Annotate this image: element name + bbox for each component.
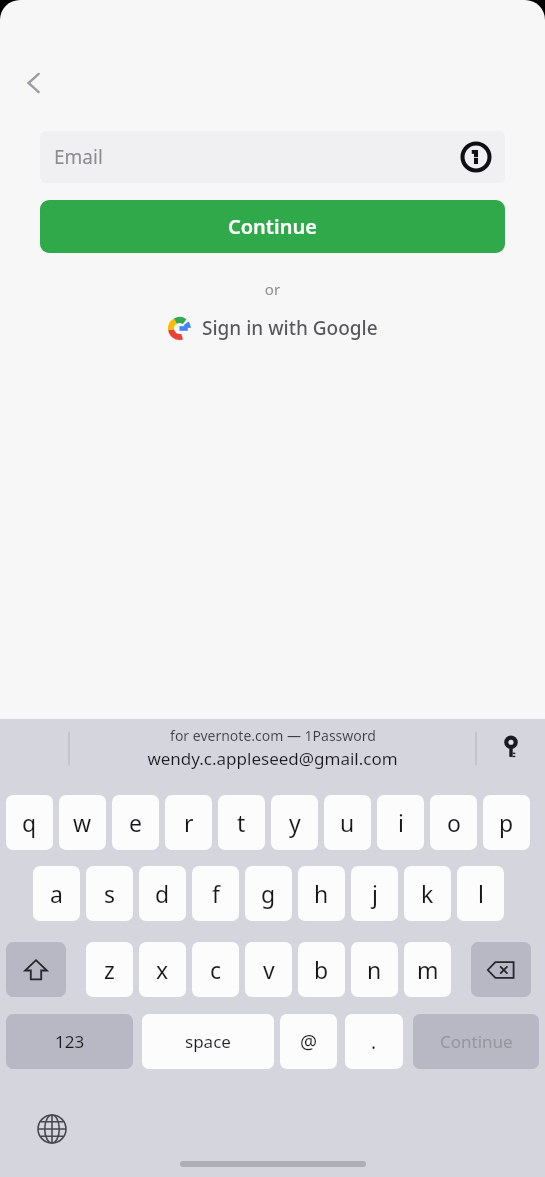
button[interactable]: f bbox=[192, 866, 239, 921]
staticText: 123 bbox=[55, 1030, 85, 1053]
button[interactable]: Back bbox=[11, 60, 57, 106]
staticText: n bbox=[367, 954, 382, 985]
staticText: i bbox=[398, 807, 404, 838]
button[interactable]: z bbox=[86, 942, 133, 997]
staticText: q bbox=[22, 807, 37, 838]
button[interactable]: r bbox=[165, 795, 212, 850]
button[interactable]: Continue bbox=[413, 1014, 539, 1069]
staticText: c bbox=[210, 954, 222, 985]
button[interactable]: m bbox=[404, 942, 451, 997]
staticText: Continue bbox=[228, 213, 317, 240]
staticText: k bbox=[421, 878, 434, 909]
button[interactable]: space bbox=[142, 1014, 274, 1069]
staticText: m bbox=[417, 954, 439, 985]
button[interactable]: u bbox=[324, 795, 371, 850]
staticText: for evernote.com — 1Password bbox=[170, 726, 376, 745]
button[interactable]: l bbox=[457, 866, 504, 921]
button[interactable]: e bbox=[112, 795, 159, 850]
staticText: l bbox=[478, 878, 484, 909]
button[interactable]: v bbox=[245, 942, 292, 997]
button[interactable]: . bbox=[345, 1014, 403, 1069]
staticText: space bbox=[185, 1030, 231, 1053]
staticText: g bbox=[261, 878, 276, 909]
staticText: Email bbox=[54, 144, 103, 170]
button[interactable]: h bbox=[298, 866, 345, 921]
button[interactable]: c bbox=[192, 942, 239, 997]
button[interactable]: y bbox=[271, 795, 318, 850]
staticText: w bbox=[73, 807, 92, 838]
button[interactable]: 123 bbox=[6, 1014, 133, 1069]
staticText: x bbox=[156, 954, 169, 985]
button[interactable]: @ bbox=[280, 1014, 337, 1069]
staticText: Sign in with Google bbox=[202, 315, 378, 341]
staticText: wendy.c.appleseed@gmail.com bbox=[147, 747, 398, 770]
button[interactable]: d bbox=[139, 866, 186, 921]
button[interactable]: Backspace bbox=[471, 942, 531, 997]
button[interactable]: k bbox=[404, 866, 451, 921]
staticText: b bbox=[314, 954, 329, 985]
staticText: o bbox=[447, 807, 461, 838]
button[interactable]: a bbox=[33, 866, 80, 921]
button[interactable]: s bbox=[86, 866, 133, 921]
staticText: u bbox=[340, 807, 355, 838]
button[interactable]: n bbox=[351, 942, 398, 997]
button[interactable]: Sign in with Google bbox=[0, 311, 545, 345]
staticText: @ bbox=[300, 1029, 318, 1055]
button[interactable]: b bbox=[298, 942, 345, 997]
button[interactable]: 1Password key bbox=[489, 726, 533, 770]
staticText: . bbox=[371, 1029, 377, 1055]
staticText: j bbox=[372, 878, 378, 909]
button[interactable]: t bbox=[218, 795, 265, 850]
button[interactable]: q bbox=[6, 795, 53, 850]
button[interactable]: x bbox=[139, 942, 186, 997]
staticText: y bbox=[289, 807, 301, 838]
staticText: s bbox=[104, 878, 116, 909]
staticText: a bbox=[50, 878, 63, 909]
staticText: or bbox=[0, 279, 545, 299]
button[interactable]: Shift bbox=[6, 942, 66, 997]
staticText: t bbox=[237, 807, 246, 838]
button[interactable]: Email bbox=[40, 131, 505, 183]
staticText: v bbox=[263, 954, 275, 985]
staticText: d bbox=[155, 878, 170, 909]
staticText: f bbox=[212, 878, 220, 909]
button[interactable]: j bbox=[351, 866, 398, 921]
button[interactable]: g bbox=[245, 866, 292, 921]
staticText: Continue bbox=[440, 1030, 513, 1053]
staticText: e bbox=[129, 807, 142, 838]
button[interactable]: w bbox=[59, 795, 106, 850]
button[interactable]: p bbox=[483, 795, 530, 850]
button[interactable]: Change keyboard bbox=[30, 1107, 74, 1151]
staticText: r bbox=[184, 807, 194, 838]
button[interactable]: i bbox=[377, 795, 424, 850]
staticText: z bbox=[104, 954, 115, 985]
button[interactable]: Continue bbox=[40, 200, 505, 253]
staticText: h bbox=[314, 878, 329, 909]
staticText: p bbox=[499, 807, 514, 838]
button[interactable]: 1Password autofill bbox=[458, 139, 494, 175]
button[interactable]: o bbox=[430, 795, 477, 850]
